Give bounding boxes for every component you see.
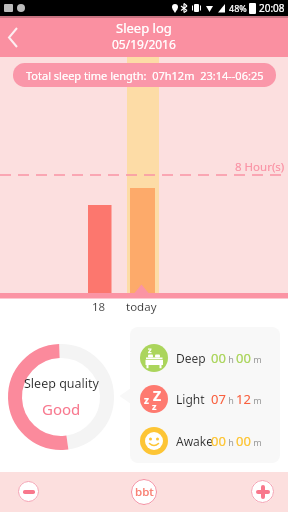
staticText: 00 h 00 m	[211, 432, 262, 450]
staticText: Total sleep time length: 07h12m 23:14--0…	[26, 68, 264, 83]
staticText: 07 h 12 m	[211, 390, 262, 408]
staticText: Light	[176, 391, 205, 407]
button[interactable]	[18, 481, 39, 502]
staticText: 18	[92, 299, 106, 315]
staticText: z	[152, 400, 157, 412]
button[interactable]: bbt	[131, 479, 157, 505]
button[interactable]: Total sleep time length: 07h12m 23:14--0…	[13, 63, 276, 87]
button[interactable]: Z	[140, 385, 270, 413]
staticText: today	[126, 299, 157, 315]
button[interactable]	[0, 18, 30, 56]
button[interactable]: Deep	[140, 344, 270, 372]
staticText: bbt	[135, 484, 154, 500]
staticText: z	[144, 393, 149, 407]
staticText: Sleep log	[116, 19, 172, 37]
button[interactable]: Awake	[140, 427, 270, 455]
button[interactable]	[251, 480, 274, 503]
staticText: 05/19/2016	[112, 36, 176, 52]
staticText: 00 h 00 m	[211, 349, 262, 367]
staticText: 48%	[229, 2, 247, 14]
staticText: Good	[42, 399, 81, 419]
staticText: Z	[153, 386, 162, 405]
staticText: 20:08	[259, 1, 285, 15]
staticText: 8 Hour(s)	[235, 159, 285, 175]
staticText: Awake	[176, 433, 214, 449]
staticText: Sleep quality	[24, 375, 99, 392]
staticText: Deep	[176, 350, 206, 366]
